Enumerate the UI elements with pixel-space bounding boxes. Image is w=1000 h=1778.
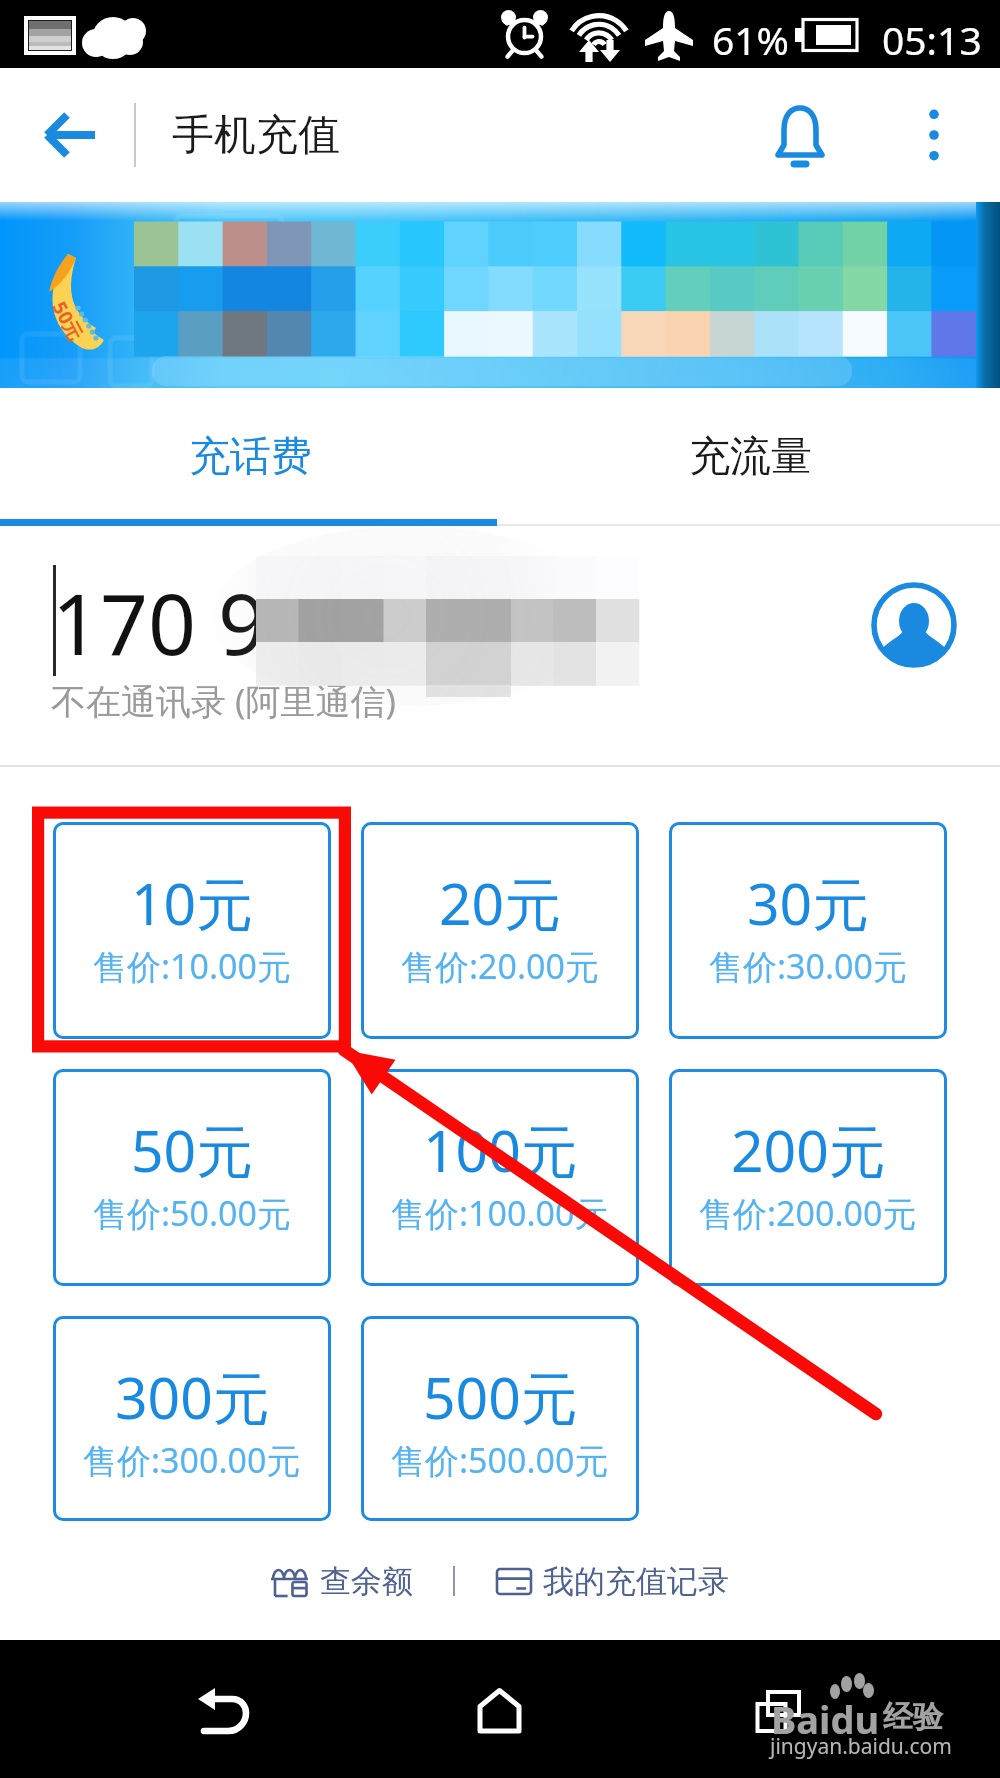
staticText: 我的充值记录 xyxy=(543,1562,729,1601)
button[interactable]: 充流量 xyxy=(500,388,1000,526)
button[interactable]: Back xyxy=(176,1667,268,1759)
button[interactable]: 50元 xyxy=(53,1069,331,1286)
button[interactable]: 200元 xyxy=(669,1069,947,1286)
staticText: 50元 xyxy=(131,1111,254,1189)
button[interactable]: 100元 xyxy=(361,1069,639,1286)
staticText: 不在通讯录 (阿里通信) xyxy=(51,677,397,725)
staticText: 售价:100.00元 xyxy=(391,1190,609,1236)
staticText: 100元 xyxy=(423,1111,578,1189)
staticText: 50元 xyxy=(46,297,89,345)
button[interactable]: 300元 xyxy=(53,1316,331,1521)
staticText: 售价:300.00元 xyxy=(83,1437,301,1483)
staticText: 20元 xyxy=(439,864,562,942)
button[interactable]: More options xyxy=(886,87,982,183)
button[interactable]: 查余额 xyxy=(263,1562,421,1601)
button[interactable]: Home xyxy=(455,1666,547,1758)
button[interactable]: 500元 xyxy=(361,1316,639,1521)
staticText: 售价:50.00元 xyxy=(93,1190,292,1236)
button[interactable]: 10元 xyxy=(53,822,331,1039)
staticText: jingyan.baidu.com xyxy=(770,1732,952,1761)
staticText: 300元 xyxy=(115,1358,270,1436)
staticText: 500元 xyxy=(423,1358,578,1436)
staticText: 充话费 xyxy=(189,431,312,483)
staticText: 05:13 xyxy=(882,13,982,66)
staticText: 售价:30.00元 xyxy=(709,943,908,989)
staticText: 售价:500.00元 xyxy=(391,1437,609,1483)
button[interactable]: Contacts xyxy=(864,575,964,675)
staticText: 售价:20.00元 xyxy=(401,943,600,989)
staticText: 10元 xyxy=(131,864,254,942)
staticText: 200元 xyxy=(731,1111,886,1189)
button[interactable]: 我的充值记录 xyxy=(487,1562,737,1601)
staticText: 手机充值 xyxy=(172,109,340,162)
button[interactable]: 20元 xyxy=(361,822,639,1039)
staticText: 61% xyxy=(712,13,790,66)
staticText: 售价:200.00元 xyxy=(699,1190,917,1236)
staticText: Baidu xyxy=(771,1693,880,1745)
staticText: 充流量 xyxy=(689,431,812,483)
staticText: 30元 xyxy=(747,864,870,942)
button[interactable]: 充话费 xyxy=(0,388,500,526)
staticText: 售价:10.00元 xyxy=(93,943,292,989)
staticText: 170 9 xyxy=(52,565,267,679)
button[interactable]: 30元 xyxy=(669,822,947,1039)
staticText: 查余额 xyxy=(320,1562,413,1601)
button[interactable]: Notifications xyxy=(752,90,848,186)
button[interactable]: Back xyxy=(26,89,118,181)
staticText: 经验 xyxy=(883,1698,943,1736)
